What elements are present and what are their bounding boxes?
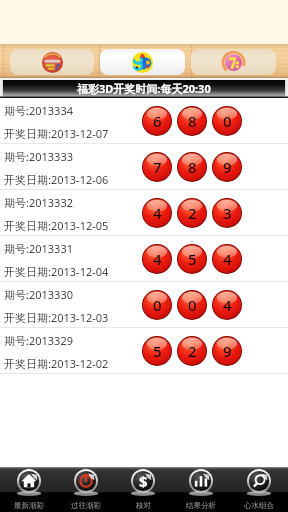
staticText: 4 xyxy=(153,249,162,269)
button[interactable]: Lottery tab 2 xyxy=(100,49,185,75)
button[interactable]: 期号:2013330 xyxy=(0,282,288,328)
button[interactable]: Latest draws xyxy=(0,467,57,512)
staticText: 期号:2013332 xyxy=(4,195,73,210)
staticText: 过往渐彩 xyxy=(71,501,101,510)
staticText: 2 xyxy=(188,341,197,361)
staticText: 期号:2013333 xyxy=(4,149,73,164)
staticText: 5 xyxy=(188,249,197,269)
staticText: 开奖日期:2013-12-06 xyxy=(4,172,109,187)
staticText: 2 xyxy=(188,203,197,223)
staticText: 8 xyxy=(188,157,197,177)
staticText: 开奖日期:2013-12-05 xyxy=(4,218,109,233)
staticText: 期号:2013329 xyxy=(4,333,73,348)
staticText: 9 xyxy=(223,157,232,177)
staticText: 开奖日期:2013-12-07 xyxy=(4,126,109,141)
other: Favourite combos xyxy=(230,467,288,512)
button[interactable]: Lottery tab 1 xyxy=(10,49,94,75)
staticText: 5 xyxy=(153,341,162,361)
button[interactable]: Favourite combos xyxy=(230,467,288,512)
button[interactable]: Check ticket xyxy=(114,467,172,512)
staticText: 心水组合 xyxy=(244,501,274,510)
button[interactable]: Result analysis xyxy=(172,467,230,512)
staticText: 核对 xyxy=(136,501,151,510)
staticText: 4 xyxy=(223,249,232,269)
staticText: 7 xyxy=(153,157,162,177)
staticText: 8 xyxy=(188,111,197,131)
staticText: 6 xyxy=(153,111,162,131)
staticText: 4 xyxy=(153,203,162,223)
other: Result analysis xyxy=(172,467,230,512)
staticText: 0 xyxy=(188,295,197,315)
staticText: 9 xyxy=(223,341,232,361)
other: Check ticket xyxy=(114,467,172,512)
staticText: 0 xyxy=(153,295,162,315)
button[interactable]: 期号:2013334 xyxy=(0,98,288,144)
button[interactable]: Past draws xyxy=(57,467,114,512)
staticText: 开奖日期:2013-12-04 xyxy=(4,264,109,279)
staticText: 开奖日期:2013-12-03 xyxy=(4,310,109,325)
staticText: 期号:2013330 xyxy=(4,287,73,302)
staticText: 期号:2013331 xyxy=(4,241,73,256)
staticText: 福彩3D开奖时间:每天20:30 xyxy=(77,81,211,96)
staticText: 结果分析 xyxy=(186,501,216,510)
staticText: 3 xyxy=(223,203,232,223)
staticText: 期号:2013334 xyxy=(4,103,73,118)
staticText: 开奖日期:2013-12-02 xyxy=(4,356,109,371)
button[interactable]: 期号:2013332 xyxy=(0,190,288,236)
staticText: $ xyxy=(139,471,148,491)
button[interactable]: 期号:2013329 xyxy=(0,328,288,374)
button[interactable]: 期号:2013331 xyxy=(0,236,288,282)
staticText: 0 xyxy=(223,111,232,131)
button[interactable]: Lottery tab 3 xyxy=(191,49,276,75)
staticText: 4 xyxy=(223,295,232,315)
button[interactable]: 期号:2013333 xyxy=(0,144,288,190)
other: Latest draws xyxy=(0,467,57,512)
staticText: 最新渐彩 xyxy=(14,501,44,510)
other: Past draws xyxy=(57,467,114,512)
